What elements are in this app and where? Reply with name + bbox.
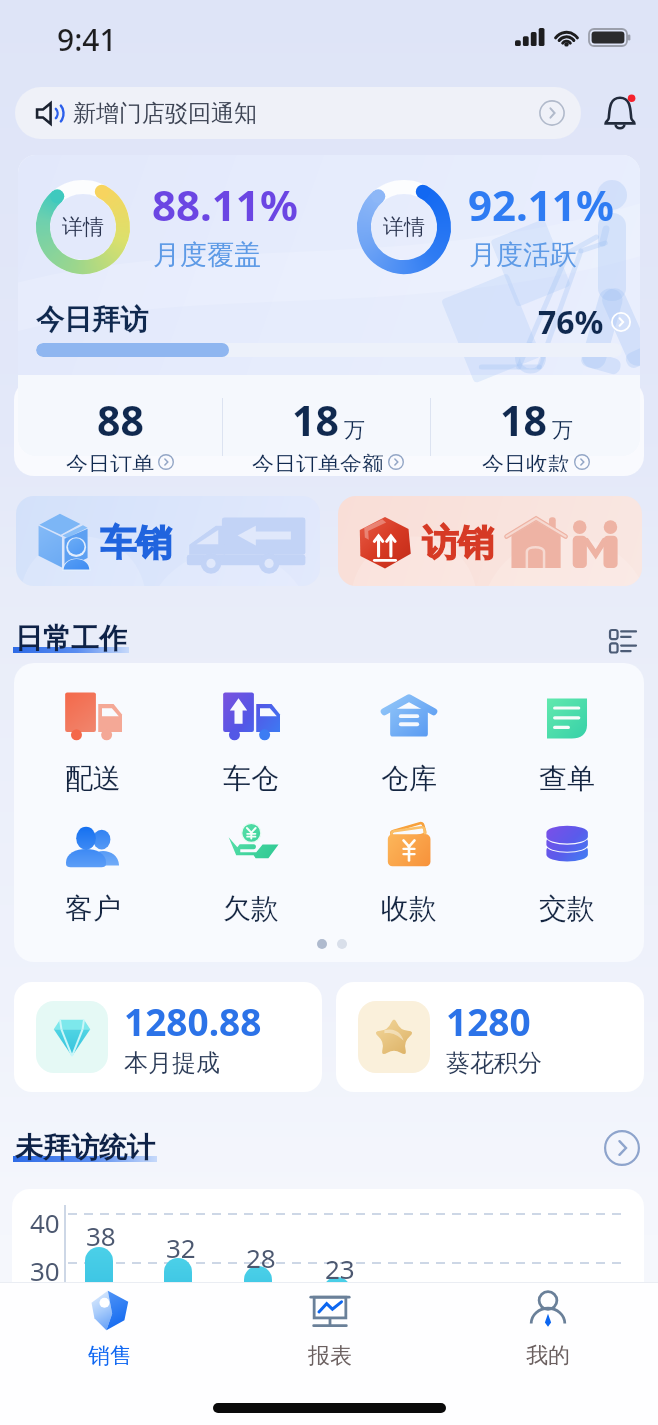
staticText: 1280.88	[124, 996, 262, 1046]
button[interactable]: 欠款	[190, 819, 312, 935]
staticText: 本月提成	[124, 1048, 220, 1078]
button[interactable]: 收款	[348, 819, 470, 935]
staticText: 查单	[539, 761, 595, 796]
staticText: 车仓	[223, 761, 279, 796]
staticText: 访销	[422, 520, 494, 565]
staticText: 88.11%	[152, 176, 298, 233]
staticText: 报表	[308, 1342, 352, 1370]
staticText: 详情	[62, 214, 104, 240]
staticText: 今日订单金额	[252, 451, 384, 472]
button[interactable]: More	[600, 1126, 644, 1170]
button[interactable]: 新增门店驳回通知	[15, 87, 581, 139]
staticText: 月度活跃	[469, 238, 577, 272]
staticText: 28	[246, 1240, 276, 1275]
staticText: 今日拜访	[36, 302, 148, 337]
staticText: 未拜访统计	[15, 1130, 155, 1165]
staticText: 1280	[446, 996, 531, 1046]
staticText: 客户	[65, 891, 121, 926]
staticText: 配送	[65, 761, 121, 796]
button[interactable]: 详情	[35, 179, 131, 275]
staticText: 交款	[539, 891, 595, 926]
button[interactable]: 1280.88	[14, 982, 322, 1092]
staticText: 9:41	[57, 19, 117, 60]
staticText: 18	[500, 392, 547, 448]
staticText: 万	[552, 417, 573, 443]
button[interactable]: 18	[438, 392, 634, 472]
staticText: 76%	[538, 300, 604, 344]
button[interactable]: 88	[22, 392, 218, 472]
staticText: 万	[344, 417, 365, 443]
button[interactable]: 报表	[220, 1288, 440, 1388]
staticText: 今日订单	[66, 451, 154, 472]
staticText: 新增门店驳回通知	[73, 99, 257, 128]
button[interactable]: 配送	[32, 689, 154, 805]
button[interactable]: 仓库	[348, 689, 470, 805]
staticText: 日常工作	[15, 621, 127, 656]
staticText: 月度覆盖	[153, 238, 261, 272]
staticText: 18	[292, 392, 339, 448]
staticText: 葵花积分	[446, 1048, 542, 1078]
staticText: 仓库	[381, 761, 437, 796]
button[interactable]: 18	[230, 392, 426, 472]
staticText: 88	[97, 392, 144, 448]
staticText: 40	[30, 1205, 60, 1240]
staticText: 30	[30, 1253, 60, 1288]
staticText: 23	[325, 1251, 355, 1286]
button[interactable]: 车销	[16, 496, 320, 586]
staticText: 销售	[88, 1342, 132, 1370]
staticText: 38	[86, 1218, 116, 1253]
button[interactable]: 销售	[0, 1288, 220, 1388]
button[interactable]: 1280	[336, 982, 644, 1092]
button[interactable]: 我的	[438, 1288, 658, 1388]
staticText: 欠款	[223, 891, 279, 926]
staticText: 今日收款	[482, 451, 570, 472]
staticText: 92.11%	[468, 176, 614, 233]
button[interactable]: Notifications	[595, 88, 645, 138]
button[interactable]: 访销	[338, 496, 642, 586]
staticText: 32	[166, 1230, 196, 1265]
staticText: 详情	[383, 214, 425, 240]
staticText: 我的	[526, 1342, 570, 1370]
button[interactable]: 详情	[356, 179, 452, 275]
staticText: 收款	[381, 891, 437, 926]
button[interactable]: 查单	[506, 689, 628, 805]
staticText: 车销	[100, 520, 172, 565]
button[interactable]: List view	[600, 619, 644, 663]
button[interactable]: 客户	[32, 819, 154, 935]
button[interactable]: 交款	[506, 819, 628, 935]
button[interactable]: 车仓	[190, 689, 312, 805]
